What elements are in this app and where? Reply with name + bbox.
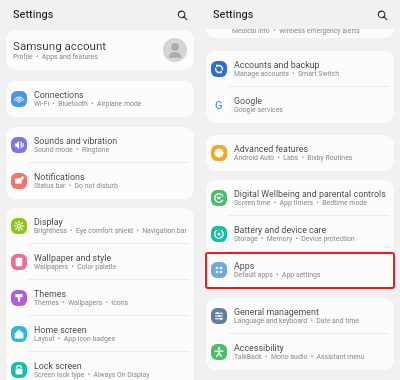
staticText: Samsung account — [13, 39, 107, 53]
staticText: Default apps • App settings — [234, 271, 321, 279]
button[interactable]: Battery and device care — [206, 216, 394, 252]
button[interactable]: Search — [173, 6, 191, 24]
staticText: Connections — [34, 90, 84, 100]
staticText: Sounds and vibration — [34, 136, 118, 146]
staticText: Settings — [213, 8, 254, 21]
button[interactable]: Advanced features — [206, 135, 394, 171]
staticText: Screen lock type • Always On Display — [34, 371, 150, 379]
button[interactable]: Sounds and vibration — [6, 127, 194, 163]
staticText: Android Auto • Labs • Bixby Routines — [234, 154, 353, 162]
staticText: Settings — [13, 8, 54, 21]
staticText: Lock screen — [34, 361, 82, 371]
staticText: Wallpaper and style — [34, 253, 112, 263]
staticText: Manage accounts • Smart Switch — [234, 70, 339, 78]
button[interactable]: Home screen — [6, 316, 194, 352]
staticText: Storage • Memory • Device protection — [234, 235, 355, 243]
staticText: Language and keyboard • Date and time — [234, 317, 359, 325]
staticText: Screen time • App timers • Bedtime mode — [234, 199, 367, 207]
staticText: Themes — [34, 289, 67, 299]
staticText: Google — [234, 96, 263, 106]
staticText: Brightness • Eye comfort shield • Naviga… — [34, 227, 187, 235]
staticText: Themes • Wallpapers • Icons — [34, 299, 129, 307]
staticText: Wallpapers • Color palette — [34, 263, 117, 271]
staticText: Layout • App icon badges — [34, 335, 116, 343]
staticText: Accounts and backup — [234, 60, 320, 70]
staticText: TalkBack • Mono audio • Assistant menu — [234, 353, 365, 361]
button[interactable]: Notifications — [6, 163, 194, 199]
button[interactable]: Themes — [6, 280, 194, 316]
staticText: Sound mode • Ringtone — [34, 146, 110, 154]
button[interactable]: Connections — [6, 81, 194, 117]
staticText: Home screen — [34, 325, 87, 335]
button[interactable]: Accessibility — [206, 334, 394, 370]
staticText: Digital Wellbeing and parental controls — [234, 189, 386, 199]
staticText: Battery and device care — [234, 225, 327, 235]
button[interactable]: Wallpaper and style — [6, 244, 194, 280]
staticText: Profile • Apps and features — [13, 53, 98, 61]
staticText: Wi-Fi • Bluetooth • Airplane mode — [34, 100, 142, 108]
staticText: Apps — [234, 261, 255, 271]
button[interactable]: G — [211, 87, 392, 123]
staticText: Display — [34, 217, 63, 227]
staticText: Medical info • Wireless emergency alerts — [232, 29, 360, 35]
staticText: Advanced features — [234, 144, 308, 154]
staticText: G — [215, 99, 223, 112]
button[interactable]: Display — [6, 208, 194, 244]
staticText: Google services — [234, 106, 283, 114]
button[interactable]: Lock screen — [6, 352, 194, 380]
button[interactable]: Apps — [206, 252, 394, 288]
staticText: Notifications — [34, 172, 85, 182]
button[interactable]: General management — [206, 298, 394, 334]
staticText: Status bar • Do not disturb — [34, 182, 118, 190]
button[interactable]: Samsung account — [13, 30, 187, 70]
button[interactable]: Search — [373, 6, 391, 24]
staticText: Accessibility — [234, 343, 284, 353]
staticText: General management — [234, 307, 319, 317]
button[interactable]: Accounts and backup — [206, 51, 394, 87]
button[interactable]: Digital Wellbeing and parental controls — [206, 180, 394, 216]
